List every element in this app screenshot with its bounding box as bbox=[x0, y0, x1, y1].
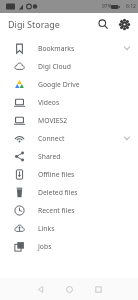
staticText: Digi Storage bbox=[8, 18, 60, 30]
staticText: Google Drive bbox=[38, 80, 80, 89]
button[interactable]: Bookmarks bbox=[0, 39, 138, 57]
staticText: Bookmarks bbox=[38, 44, 75, 53]
staticText: Deleted files bbox=[38, 188, 78, 197]
staticText: Recent files bbox=[38, 206, 75, 215]
staticText: Jobs bbox=[38, 242, 52, 251]
staticText: Digi Cloud bbox=[38, 62, 71, 71]
button[interactable]: Search bbox=[93, 14, 113, 34]
button[interactable]: Shared bbox=[0, 147, 138, 165]
staticText: Offline files bbox=[38, 170, 75, 179]
staticText: Connect bbox=[38, 134, 65, 143]
staticText: MOVIES2 bbox=[38, 116, 68, 125]
button[interactable]: Settings bbox=[114, 14, 134, 34]
staticText: Links bbox=[38, 224, 55, 233]
button[interactable]: Recents bbox=[87, 278, 109, 300]
staticText: Shared bbox=[38, 152, 61, 161]
button[interactable]: Home bbox=[58, 278, 80, 300]
button[interactable]: Videos bbox=[0, 93, 138, 111]
button[interactable]: Google Drive bbox=[0, 75, 138, 93]
button[interactable]: Offline files bbox=[0, 165, 138, 183]
button[interactable]: MOVIES2 bbox=[0, 111, 138, 129]
button[interactable]: Digi Cloud bbox=[0, 57, 138, 75]
button[interactable]: Links bbox=[0, 219, 138, 237]
button[interactable]: Recent files bbox=[0, 201, 138, 219]
staticText: 97% bbox=[102, 3, 112, 10]
staticText: Videos bbox=[38, 98, 60, 107]
button[interactable]: Connect bbox=[0, 129, 138, 147]
staticText: 6:12 bbox=[126, 3, 136, 10]
button[interactable]: Jobs bbox=[0, 237, 138, 255]
button[interactable]: Deleted files bbox=[0, 183, 138, 201]
button[interactable]: Back bbox=[29, 278, 51, 300]
